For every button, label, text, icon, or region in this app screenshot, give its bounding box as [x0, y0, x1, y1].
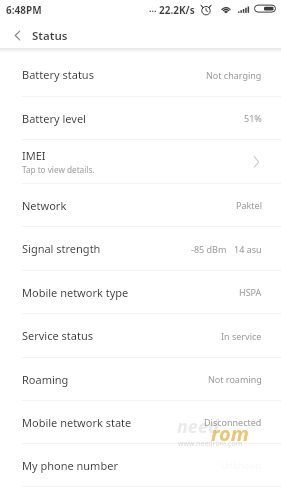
staticText: Battery level: [22, 111, 86, 126]
staticText: rom: [211, 420, 249, 447]
staticText: 22.2K/s: [159, 3, 195, 17]
staticText: ...: [149, 2, 157, 14]
staticText: Not charging: [206, 69, 262, 81]
staticText: 14 asu: [234, 243, 262, 255]
staticText: Paktel: [236, 199, 262, 211]
staticText: 6:48PM: [6, 3, 42, 17]
staticText: Mobile network state: [22, 415, 132, 430]
staticText: IMEI: [22, 148, 46, 163]
staticText: Status: [32, 28, 68, 44]
button[interactable]: My phone number: [0, 444, 281, 486]
button[interactable]: Mobile network type: [0, 271, 281, 313]
staticText: -85 dBm: [191, 243, 227, 255]
button[interactable]: IMEI: [0, 140, 281, 183]
staticText: Signal strength: [22, 241, 101, 256]
staticText: Network: [22, 198, 67, 213]
button[interactable]: Network: [0, 184, 281, 226]
staticText: Tap to view details.: [22, 164, 95, 175]
staticText: My phone number: [22, 458, 118, 473]
button[interactable]: Back: [8, 26, 26, 44]
staticText: Service status: [22, 328, 94, 343]
staticText: need: [177, 414, 219, 439]
button[interactable]: Battery status: [0, 53, 281, 96]
staticText: In service: [221, 330, 262, 342]
button[interactable]: Service status: [0, 314, 281, 357]
staticText: Mobile network type: [22, 285, 129, 300]
staticText: Not roaming: [208, 373, 262, 385]
staticText: HSPA: [239, 286, 262, 298]
button[interactable]: Mobile network state: [0, 401, 281, 443]
staticText: Roaming: [22, 372, 69, 387]
staticText: www.needrom.com: [178, 439, 243, 449]
staticText: 51%: [244, 112, 262, 124]
button[interactable]: Battery level: [0, 97, 281, 139]
button[interactable]: Signal strength: [0, 227, 281, 270]
staticText: Battery status: [22, 67, 94, 82]
staticText: Disconnected: [204, 416, 262, 428]
button[interactable]: Roaming: [0, 358, 281, 400]
